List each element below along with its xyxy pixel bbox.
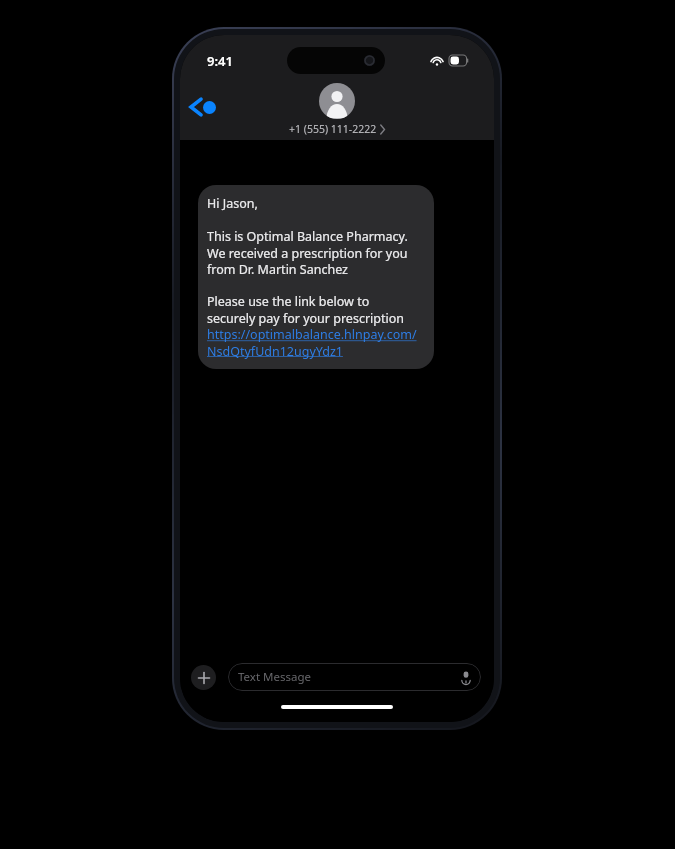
- staticText: Hi Jason,: [207, 195, 258, 212]
- staticText: Please use the link below to securely pa…: [207, 293, 404, 326]
- button[interactable]: +1 (555) 111-2222: [289, 83, 385, 136]
- staticText: This is Optimal Balance Pharmacy. We rec…: [207, 228, 408, 277]
- staticText: 9:41: [207, 52, 233, 70]
- button[interactable]: Dictate: [459, 670, 473, 684]
- button[interactable]: Hi Jason,: [198, 185, 434, 369]
- button[interactable]: https://optimalbalance.hlnpay.com/ NsdQt…: [207, 326, 417, 359]
- button[interactable]: Text Message: [228, 663, 481, 691]
- button[interactable]: Back: [188, 92, 218, 122]
- staticText: Text Message: [238, 669, 312, 685]
- button[interactable]: Add attachment: [191, 665, 216, 690]
- staticText: +1 (555) 111-2222: [289, 122, 377, 136]
